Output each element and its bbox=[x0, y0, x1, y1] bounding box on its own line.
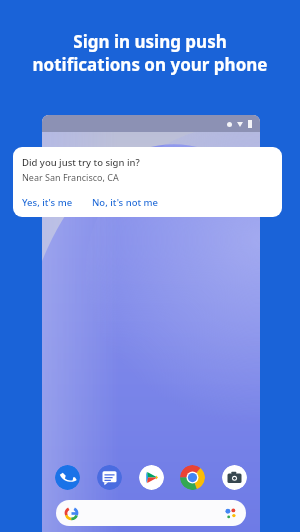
button[interactable]: Chrome bbox=[180, 465, 205, 490]
button[interactable]: Yes, it's me bbox=[22, 196, 73, 209]
staticText: Did you just try to sign in? bbox=[22, 156, 140, 169]
staticText: Sign in using push notifications on your… bbox=[16, 30, 284, 76]
button[interactable]: No, it's not me bbox=[92, 196, 159, 209]
button[interactable]: Phone bbox=[55, 465, 80, 490]
staticText: No, it's not me bbox=[92, 196, 159, 209]
staticText: Yes, it's me bbox=[22, 196, 73, 209]
button[interactable]: Camera bbox=[222, 465, 247, 490]
button[interactable] bbox=[56, 500, 246, 526]
button[interactable]: Did you just try to sign in? bbox=[13, 147, 282, 217]
staticText: Near San Francisco, CA bbox=[22, 171, 119, 183]
button[interactable]: Messages bbox=[97, 465, 122, 490]
button[interactable]: Play Store bbox=[139, 465, 164, 490]
